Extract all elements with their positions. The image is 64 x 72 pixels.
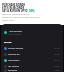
staticText: 11.2%: [54, 47, 60, 50]
staticText: Bonds: [4, 40, 12, 43]
button[interactable]: IIFL Finance: [4, 63, 60, 69]
staticText: Make your money work harder: [2, 13, 30, 16]
staticText: Edelweiss: [8, 69, 54, 72]
staticText: 8.5% avg yield: [9, 33, 21, 35]
staticText: Shriram Finance: [8, 47, 54, 50]
staticText: 10.4%: [54, 53, 60, 56]
staticText: issuers across: [2, 19, 15, 22]
button[interactable]: Muthoot Fin: [4, 51, 60, 57]
staticText: PURCHASE BONDS: [2, 3, 26, 6]
staticText: 12.1%: [54, 59, 60, 62]
staticText: with secure, high-yield bonds from trust…: [2, 16, 40, 19]
button[interactable]: Navi Finserv: [4, 57, 60, 63]
staticText: 14%: [29, 9, 35, 12]
staticText: 10.9%: [54, 65, 60, 68]
staticText: Muthoot Fin: [8, 53, 54, 56]
staticText: Your portfolio: [9, 30, 22, 33]
staticText: 9.75%: [54, 69, 60, 72]
staticText: STTS IN SECONDS: [2, 6, 25, 9]
button[interactable]: Shriram Finance: [4, 45, 60, 51]
staticText: IIFL Finance: [8, 65, 54, 68]
staticText: GET A RETURN UPTO: [2, 9, 29, 12]
button[interactable]: Edelweiss: [4, 69, 60, 72]
staticText: Navi Finserv: [8, 59, 54, 62]
